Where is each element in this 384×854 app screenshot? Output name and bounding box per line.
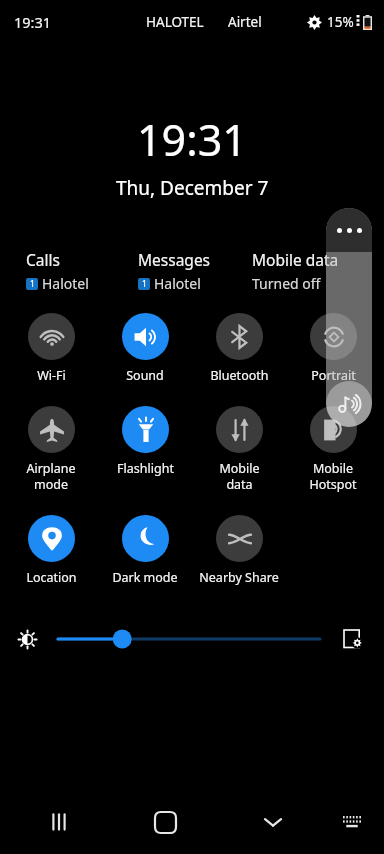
button[interactable]: Keyboard (326, 790, 378, 854)
button[interactable]: Messages (138, 249, 252, 293)
button[interactable]: Brightness settings (340, 626, 366, 652)
button[interactable]: Bluetooth (192, 311, 286, 384)
staticText: 1 (142, 278, 147, 290)
button[interactable] (58, 626, 320, 652)
staticText: Flashlight (117, 460, 174, 477)
button[interactable]: Home (112, 790, 219, 854)
button[interactable]: Mobile data (252, 249, 339, 293)
staticText: Halotel (154, 274, 201, 293)
staticText: Wi-Fi (37, 367, 66, 384)
staticText: Dark mode (112, 569, 178, 586)
staticText: Mobile Hotspot (309, 460, 357, 493)
staticText: 19:31 (137, 110, 247, 169)
button[interactable]: Mobile Hotspot (286, 404, 380, 493)
button[interactable]: Sound (98, 311, 192, 384)
button[interactable]: Flashlight (98, 404, 192, 477)
button[interactable]: Media output (326, 381, 372, 427)
staticText: 19:31 (14, 12, 52, 32)
staticText: Nearby Share (199, 569, 279, 586)
staticText: Turned off (252, 274, 321, 293)
staticText: Airtel (228, 13, 262, 31)
button[interactable]: Calls (26, 249, 138, 293)
button[interactable]: Nearby Share (192, 513, 286, 586)
staticText: Messages (138, 249, 211, 270)
staticText: Mobile data (252, 249, 339, 270)
staticText: Location (26, 569, 77, 586)
staticText: 1 (30, 278, 35, 290)
staticText: Portrait (311, 367, 356, 384)
button[interactable]: More options (326, 208, 372, 252)
button[interactable]: Portrait (286, 311, 380, 384)
staticText: Bluetooth (210, 367, 269, 384)
staticText: 15% (327, 13, 354, 31)
button[interactable]: Wi-Fi (4, 311, 98, 384)
staticText: Sound (126, 367, 164, 384)
button[interactable]: Dark mode (98, 513, 192, 586)
button[interactable]: Airplane mode (4, 404, 98, 493)
button[interactable]: Back (219, 790, 326, 854)
staticText: Mobile data (219, 460, 260, 493)
staticText: Calls (26, 249, 60, 270)
button[interactable]: Location (4, 513, 98, 586)
button[interactable]: Mobile data (192, 404, 286, 493)
staticText: HALOTEL (146, 13, 204, 31)
button[interactable]: Recent apps (6, 790, 112, 854)
staticText: Airplane mode (26, 460, 76, 493)
staticText: Thu, December 7 (116, 175, 269, 201)
staticText: Halotel (42, 274, 89, 293)
